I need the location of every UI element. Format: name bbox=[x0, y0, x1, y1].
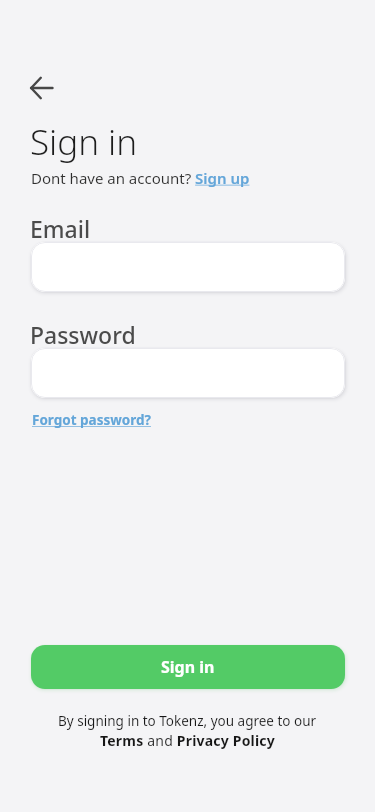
staticText: Terms and Privacy Policy bbox=[100, 731, 275, 750]
staticText: Sign in bbox=[30, 118, 138, 166]
button[interactable]: Dont have an account? Sign up bbox=[31, 168, 250, 188]
staticText: By signing in to Tokenz, you agree to ou… bbox=[58, 712, 317, 730]
staticText: Forgot password? bbox=[32, 411, 151, 429]
staticText: Password bbox=[30, 319, 136, 350]
staticText: Dont have an account? Sign up bbox=[31, 168, 250, 188]
staticText: Sign in bbox=[161, 656, 215, 678]
button[interactable] bbox=[31, 348, 345, 398]
button[interactable] bbox=[31, 242, 345, 292]
staticText: Email bbox=[30, 213, 91, 244]
button[interactable]: Forgot password? bbox=[32, 411, 151, 429]
button[interactable] bbox=[22, 68, 62, 108]
button[interactable]: Sign in bbox=[31, 645, 345, 689]
